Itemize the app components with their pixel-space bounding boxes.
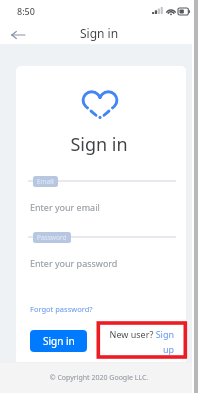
button[interactable]: Forgot password?: [30, 304, 93, 314]
staticText: Sign in: [0, 132, 198, 157]
button[interactable]: New user? Sign up: [106, 328, 174, 355]
staticText: © Copyright 2020 Google LLC.: [0, 373, 198, 383]
button[interactable]: Back: [9, 26, 27, 44]
staticText: Enter your email: [30, 201, 100, 213]
staticText: New user? Sign up: [106, 328, 174, 355]
staticText: Email: [37, 177, 54, 186]
staticText: Enter your password: [30, 257, 118, 269]
staticText: Sign in: [43, 334, 75, 348]
button[interactable]: Sign in: [30, 330, 87, 352]
staticText: 8:50: [17, 5, 35, 17]
staticText: Password: [37, 233, 67, 242]
staticText: Sign in: [0, 25, 198, 41]
